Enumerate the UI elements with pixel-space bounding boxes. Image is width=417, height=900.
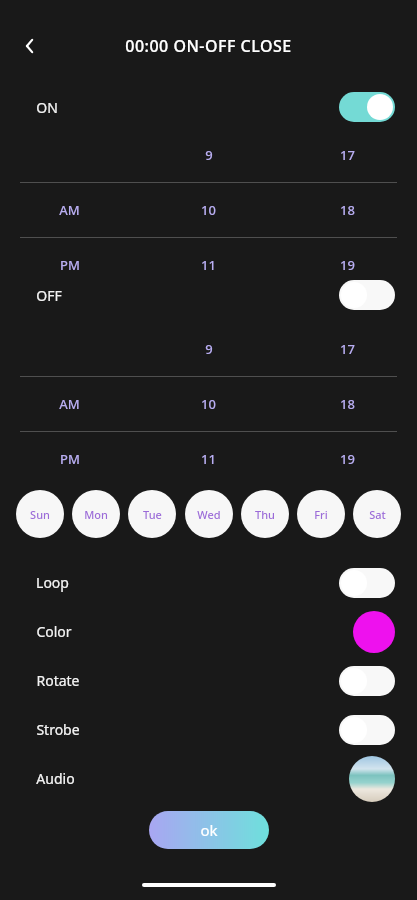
- staticText: Strobe: [36, 720, 80, 739]
- staticText: ok: [200, 820, 218, 840]
- button[interactable]: Toggle off: [339, 715, 395, 745]
- button[interactable]: Mon: [72, 490, 120, 538]
- staticText: 18: [340, 395, 355, 413]
- button[interactable]: Rotate: [0, 656, 417, 705]
- staticText: Wed: [197, 507, 221, 522]
- button[interactable]: ok: [149, 811, 269, 849]
- staticText: Rotate: [36, 671, 80, 690]
- staticText: Audio: [36, 769, 75, 788]
- staticText: Loop: [36, 573, 69, 592]
- button[interactable]: Toggle off: [339, 568, 395, 598]
- button[interactable]: Color: [0, 607, 417, 656]
- staticText: 10: [201, 395, 216, 413]
- button[interactable]: Fri: [297, 490, 345, 538]
- staticText: 19: [340, 450, 355, 468]
- staticText: 11: [201, 256, 216, 274]
- button[interactable]: Audio: [349, 756, 395, 802]
- staticText: AM: [59, 395, 80, 413]
- button[interactable]: Wed: [185, 490, 233, 538]
- button[interactable]: Toggle on: [339, 92, 395, 122]
- button[interactable]: Strobe: [0, 705, 417, 754]
- button[interactable]: ON: [0, 86, 417, 128]
- button[interactable]: Sun: [16, 490, 64, 538]
- staticText: OFF: [36, 286, 62, 305]
- button[interactable]: Back: [12, 28, 48, 64]
- staticText: Thu: [255, 507, 275, 522]
- staticText: Color: [36, 622, 72, 641]
- button[interactable]: OFF: [0, 274, 417, 316]
- staticText: PM: [60, 450, 80, 468]
- staticText: ON: [36, 98, 58, 117]
- button[interactable]: Thu: [241, 490, 289, 538]
- staticText: 19: [340, 256, 355, 274]
- staticText: 11: [201, 450, 216, 468]
- staticText: Sat: [369, 507, 386, 522]
- button[interactable]: Loop: [0, 558, 417, 607]
- button[interactable]: Toggle off: [339, 666, 395, 696]
- staticText: 17: [340, 340, 355, 358]
- staticText: 18: [340, 201, 355, 219]
- staticText: Sun: [30, 507, 50, 522]
- staticText: Mon: [84, 507, 108, 522]
- staticText: 10: [201, 201, 216, 219]
- button[interactable]: Tue: [128, 490, 176, 538]
- staticText: PM: [60, 256, 80, 274]
- staticText: 17: [340, 146, 355, 164]
- button[interactable]: Color: [353, 611, 395, 653]
- staticText: 9: [205, 146, 213, 164]
- button[interactable]: Audio: [0, 754, 417, 803]
- staticText: 00:00 ON-OFF CLOSE: [125, 35, 292, 57]
- staticText: Tue: [143, 507, 162, 522]
- staticText: Fri: [314, 507, 328, 522]
- staticText: AM: [59, 201, 80, 219]
- staticText: 9: [205, 340, 213, 358]
- button[interactable]: Sat: [353, 490, 401, 538]
- button[interactable]: Toggle off: [339, 280, 395, 310]
